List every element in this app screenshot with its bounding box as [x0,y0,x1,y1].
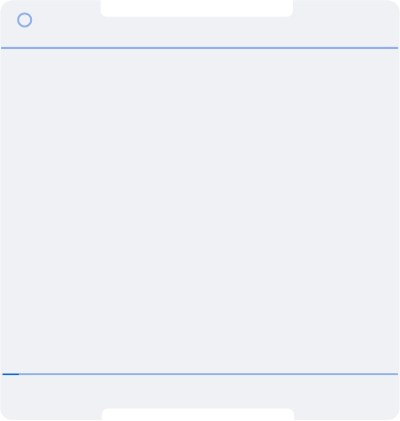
button[interactable]: Navigation menu [13,8,37,32]
button[interactable]: Top app bar [0,17,400,46]
button[interactable]: Bottom navigation bar [0,343,400,376]
